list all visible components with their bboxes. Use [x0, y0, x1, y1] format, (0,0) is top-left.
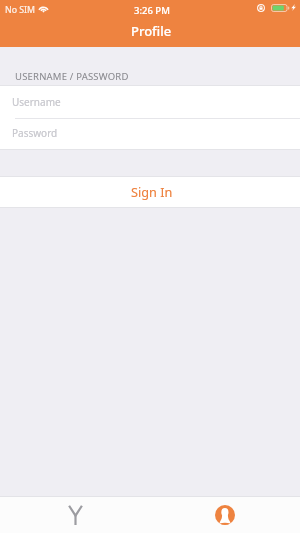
button[interactable]: Username [0, 86, 300, 118]
staticText: 3:26 PM [134, 4, 170, 17]
staticText: USERNAME / PASSWORD [15, 70, 129, 83]
button[interactable]: Profile [150, 497, 300, 533]
staticText: No SIM [5, 4, 36, 16]
staticText: Username [12, 95, 61, 109]
button[interactable]: Sign In [0, 177, 300, 207]
button[interactable]: Password [0, 119, 300, 149]
staticText: Password [12, 126, 58, 140]
staticText: Profile [131, 22, 172, 40]
button[interactable]: Home [0, 497, 150, 533]
staticText: Sign In [131, 183, 173, 200]
